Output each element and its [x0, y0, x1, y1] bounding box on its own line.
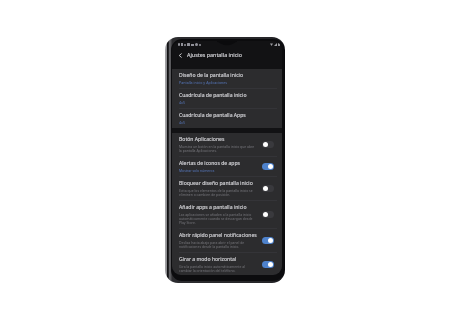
- button[interactable]: Alertas de iconos de apps: [172, 157, 282, 176]
- staticText: Gira la pantalla inicio automáticamente …: [179, 264, 246, 272]
- button[interactable]: Diseño de la pantalla inicio: [172, 69, 282, 88]
- staticText: Abrir rápido panel notificaciones: [179, 232, 257, 239]
- button[interactable]: Toggle: [262, 141, 274, 148]
- button[interactable]: Toggle: [262, 185, 274, 192]
- staticText: Bloquear diseño pantalla inicio: [179, 180, 253, 187]
- button[interactable]: Abrir rápido panel notificaciones: [172, 229, 282, 252]
- staticText: Cuadrícula de pantalla Apps: [179, 112, 246, 119]
- button[interactable]: Toggle: [262, 261, 274, 268]
- staticText: Muestra un botón en la pantalla inicio q…: [179, 144, 255, 153]
- button[interactable]: Back: [176, 51, 184, 59]
- button[interactable]: Bloquear diseño pantalla inicio: [172, 177, 282, 200]
- button[interactable]: Toggle: [262, 163, 274, 170]
- staticText: Ajustes pantalla inicio: [187, 51, 242, 58]
- staticText: 4x5: [179, 100, 186, 105]
- staticText: Añadir apps a pantalla inicio: [179, 204, 247, 211]
- staticText: Evita que los elementos de la pantalla i…: [179, 188, 253, 197]
- staticText: Desliza hacia abajo para abrir el panel …: [179, 240, 245, 249]
- staticText: Cuadrícula de pantalla inicio: [179, 92, 247, 99]
- staticText: Diseño de la pantalla inicio: [179, 72, 243, 79]
- staticText: Mostrar solo números: [179, 168, 215, 173]
- staticText: Alertas de iconos de apps: [179, 160, 241, 167]
- button[interactable]: Toggle: [262, 211, 274, 218]
- staticText: Botón Aplicaciones: [179, 136, 225, 143]
- staticText: Pantalla inicio y Aplicaciones: [179, 80, 228, 85]
- button[interactable]: Cuadrícula de pantalla inicio: [172, 89, 282, 108]
- button[interactable]: Toggle: [262, 237, 274, 244]
- button[interactable]: Cuadrícula de pantalla Apps: [172, 109, 282, 128]
- staticText: Las aplicaciones se añaden a la pantalla…: [179, 212, 253, 225]
- button[interactable]: Girar a modo horizontal: [172, 253, 282, 275]
- staticText: 4x5: [179, 120, 186, 125]
- button[interactable]: Botón Aplicaciones: [172, 133, 282, 156]
- button[interactable]: Añadir apps a pantalla inicio: [172, 201, 282, 228]
- staticText: Girar a modo horizontal: [179, 256, 237, 263]
